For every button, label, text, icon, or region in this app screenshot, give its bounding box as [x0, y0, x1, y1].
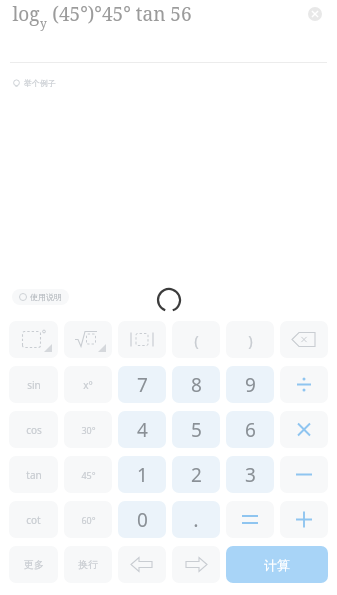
- button[interactable]: Function: [118, 321, 166, 358]
- button[interactable]: 使用说明: [12, 289, 69, 305]
- button[interactable]: 45°: [64, 456, 112, 493]
- button[interactable]: 8: [172, 366, 220, 403]
- staticText: 举个例子: [24, 78, 56, 88]
- staticText: 45°: [81, 469, 96, 481]
- button[interactable]: 2: [172, 456, 220, 493]
- staticText: 30°: [81, 424, 96, 436]
- staticText: tan: [26, 468, 42, 482]
- button[interactable]: Clear: [301, 0, 329, 28]
- button[interactable]: Plus: [280, 501, 328, 538]
- staticText: 2: [191, 462, 202, 488]
- staticText: 6: [245, 417, 256, 443]
- staticText: log: [12, 1, 40, 27]
- staticText: ): [248, 330, 253, 350]
- staticText: (45°)°45° tan 56: [47, 1, 192, 27]
- button[interactable]: 1: [118, 456, 166, 493]
- button[interactable]: 换行: [64, 546, 112, 583]
- staticText: y: [40, 15, 47, 31]
- button[interactable]: 计算: [226, 546, 328, 583]
- staticText: 5: [191, 417, 202, 443]
- button[interactable]: Backspace: [280, 321, 328, 358]
- button[interactable]: 3: [226, 456, 274, 493]
- button[interactable]: Move left: [118, 546, 166, 583]
- button[interactable]: Function: [9, 321, 58, 358]
- button[interactable]: Divide: [280, 366, 328, 403]
- button[interactable]: .: [172, 501, 220, 538]
- button[interactable]: 4: [118, 411, 166, 448]
- button[interactable]: Equals: [226, 501, 274, 538]
- button[interactable]: 6: [226, 411, 274, 448]
- button[interactable]: Multiply: [280, 411, 328, 448]
- staticText: cot: [26, 513, 41, 527]
- button[interactable]: 9: [226, 366, 274, 403]
- button[interactable]: sin: [9, 366, 58, 403]
- staticText: 8: [191, 372, 202, 398]
- button[interactable]: (: [172, 321, 220, 358]
- staticText: 换行: [78, 558, 98, 571]
- staticText: 0: [137, 507, 148, 533]
- button[interactable]: 更多: [9, 546, 58, 583]
- button[interactable]: tan: [9, 456, 58, 493]
- staticText: sin: [27, 378, 41, 392]
- button[interactable]: x°: [64, 366, 112, 403]
- button[interactable]: cot: [9, 501, 58, 538]
- staticText: cos: [26, 423, 42, 437]
- button[interactable]: 60°: [64, 501, 112, 538]
- button[interactable]: ): [226, 321, 274, 358]
- button[interactable]: 5: [172, 411, 220, 448]
- button[interactable]: cos: [9, 411, 58, 448]
- staticText: 使用说明: [30, 292, 62, 302]
- button[interactable]: 0: [118, 501, 166, 538]
- staticText: (: [194, 330, 199, 350]
- button[interactable]: 7: [118, 366, 166, 403]
- staticText: x°: [83, 378, 93, 392]
- button[interactable]: Function: [64, 321, 112, 358]
- staticText: 更多: [24, 558, 44, 571]
- staticText: 60°: [81, 514, 96, 526]
- staticText: .: [193, 506, 199, 533]
- staticText: 1: [137, 462, 148, 488]
- button[interactable]: Minus: [280, 456, 328, 493]
- button[interactable]: 30°: [64, 411, 112, 448]
- button[interactable]: Move right: [172, 546, 220, 583]
- staticText: 7: [137, 372, 148, 398]
- staticText: 9: [245, 372, 256, 398]
- staticText: 3: [245, 462, 256, 488]
- staticText: 4: [137, 417, 148, 443]
- staticText: 计算: [264, 557, 290, 573]
- button[interactable]: 举个例子: [12, 74, 56, 92]
